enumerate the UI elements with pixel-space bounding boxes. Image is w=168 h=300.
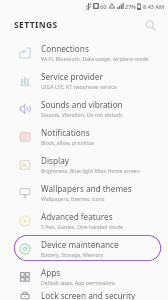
staticText: Sounds, Vibration, Do not disturb	[41, 111, 122, 118]
staticText: Wi-Fi, Bluetooth, Data usage, Airplane m…	[41, 55, 149, 62]
staticText: 27%	[125, 3, 136, 10]
staticText: GIGA LTE, KT twophone service	[41, 83, 117, 90]
staticText: 8:43 AM	[143, 3, 165, 10]
button[interactable]: Display	[0, 150, 168, 178]
staticText: Connections	[41, 43, 89, 54]
button[interactable]: Service provider	[0, 66, 168, 94]
button[interactable]: Lock screen and security	[0, 290, 168, 300]
staticText: Wallpapers and themes	[41, 183, 132, 194]
button[interactable]: Device maintenance	[0, 234, 168, 262]
staticText: Battery, Storage, Memory	[41, 251, 104, 258]
button[interactable]: Advanced features	[0, 206, 168, 234]
staticText: Default apps, App permissions	[41, 279, 116, 286]
staticText: Brightness, Blue light filter, Home scre…	[41, 167, 140, 174]
staticText: Apps	[41, 267, 61, 278]
staticText: Service provider	[41, 71, 103, 82]
staticText: S Pen, Games, One-handed mode	[41, 223, 123, 230]
staticText: SETTINGS	[14, 19, 58, 31]
staticText: Lock screen and security	[41, 290, 136, 300]
staticText: Notifications	[41, 127, 90, 138]
staticText: Block, allow, prioritize	[41, 139, 94, 146]
staticText: Display	[41, 155, 69, 166]
staticText: Device maintenance	[41, 239, 119, 250]
button[interactable]: Notifications	[0, 122, 168, 150]
button[interactable]: Connections	[0, 38, 168, 66]
staticText: Advanced features	[41, 211, 113, 222]
staticText: 60	[100, 3, 107, 10]
staticText: Sounds and vibration	[41, 99, 123, 110]
button[interactable]: Wallpapers and themes	[0, 178, 168, 206]
staticText: Wallpapers, themes, icons	[41, 195, 105, 202]
button[interactable]: Apps	[0, 262, 168, 290]
button[interactable]: Sounds and vibration	[0, 94, 168, 122]
button[interactable]: Search	[140, 15, 160, 35]
